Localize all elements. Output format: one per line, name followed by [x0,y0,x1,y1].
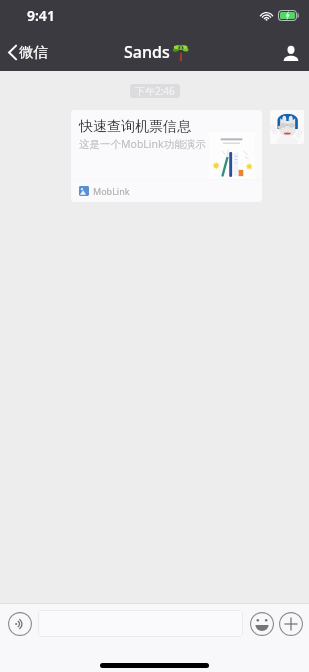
button[interactable]: Contact info [271,36,309,68]
button[interactable]: Voice input [5,609,35,639]
button[interactable]: Avatar [270,110,304,144]
staticText: 下午2:46 [135,84,175,98]
button[interactable]: Emoji [247,609,276,638]
button[interactable] [38,610,243,637]
staticText: 9:41 [27,6,55,25]
staticText: 这是一个MobLink功能演示 [79,137,206,151]
staticText: Sands [124,41,170,63]
button[interactable]: More [276,609,305,638]
button[interactable]: 快速查询机票信息 [71,110,262,202]
staticText: 快速查询机票信息 [79,118,191,136]
button[interactable]: 微信 [0,37,56,67]
staticText: 微信 [19,43,48,61]
staticText: MobLink [93,185,130,197]
